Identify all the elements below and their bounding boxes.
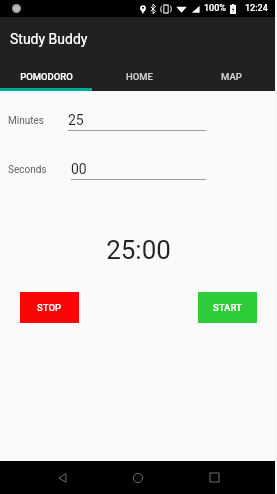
- staticText: 00: [71, 161, 87, 177]
- staticText: MAP: [221, 71, 242, 82]
- staticText: START: [213, 302, 242, 313]
- button[interactable]: Home: [114, 461, 162, 494]
- button[interactable]: Recent apps: [190, 461, 238, 494]
- staticText: Minutes: [8, 115, 44, 127]
- button[interactable]: STOP: [20, 292, 79, 323]
- button[interactable]: Back: [38, 461, 86, 494]
- staticText: HOME: [126, 71, 153, 82]
- staticText: 12:24: [245, 3, 268, 14]
- button[interactable]: POMODORO: [0, 61, 93, 91]
- staticText: POMODORO: [20, 71, 73, 82]
- staticText: Study Buddy: [10, 31, 88, 47]
- staticText: 25:00: [0, 235, 277, 265]
- button[interactable]: HOME: [93, 61, 185, 91]
- staticText: 100%: [204, 3, 226, 14]
- staticText: Seconds: [8, 164, 47, 176]
- staticText: 25: [68, 112, 84, 128]
- staticText: STOP: [37, 302, 62, 313]
- button[interactable]: START: [198, 292, 257, 323]
- button[interactable]: MAP: [185, 61, 277, 91]
